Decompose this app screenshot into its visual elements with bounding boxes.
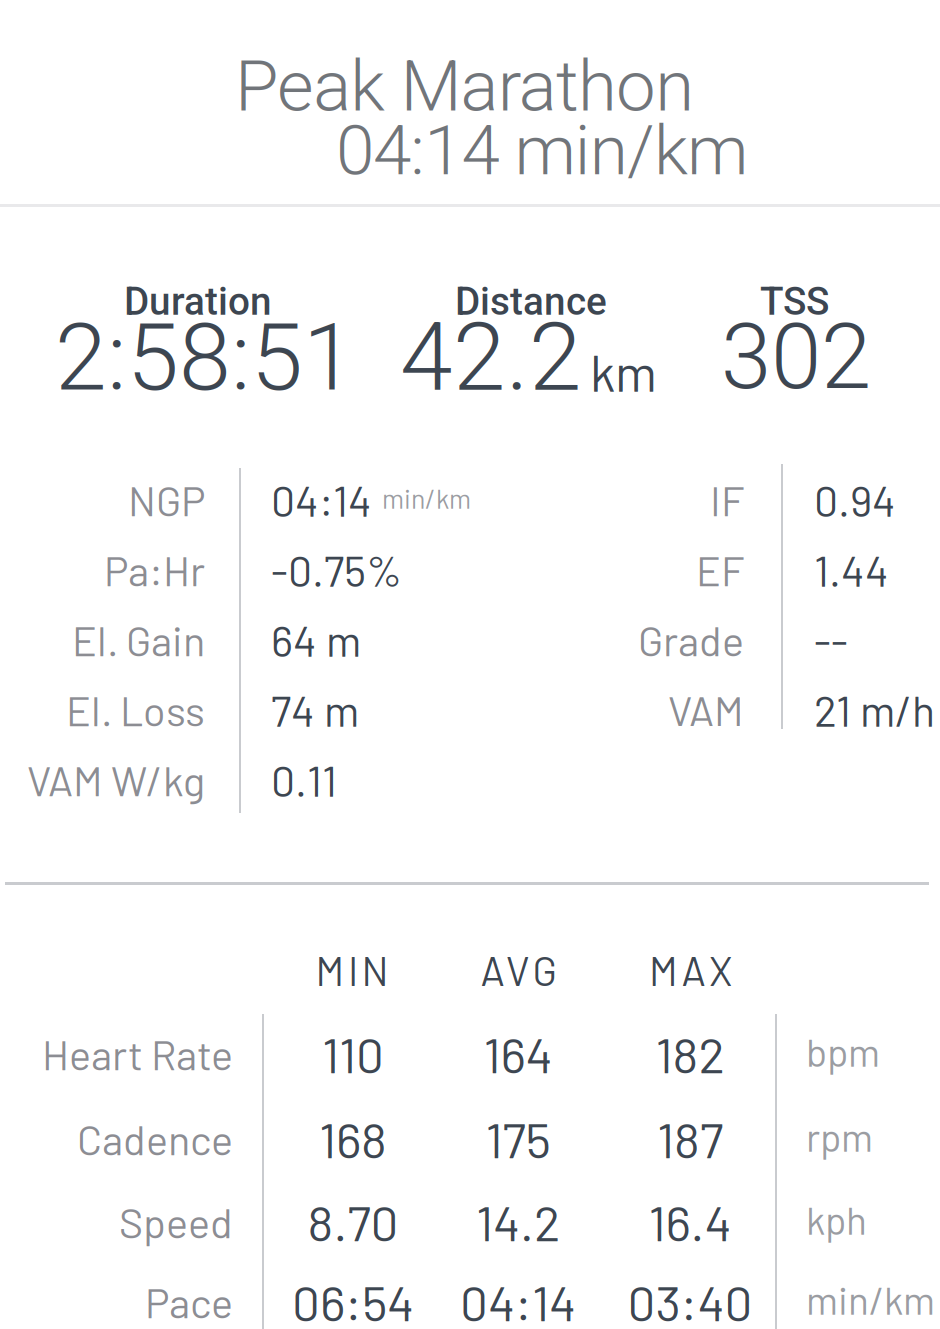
staticText: 04:14 min/km	[336, 110, 748, 191]
staticText: Distance	[455, 279, 607, 324]
staticText: 04:14	[271, 474, 372, 525]
staticText: El. Gain	[72, 615, 205, 665]
staticText: El. Loss	[66, 685, 205, 735]
staticText: 164	[483, 1024, 552, 1083]
staticText: rpm	[806, 1113, 873, 1159]
staticText: EF	[696, 545, 744, 595]
staticText: 42.2	[400, 302, 582, 413]
staticText: km	[590, 341, 657, 402]
staticText: 1.44	[814, 544, 889, 595]
staticText: 74 m	[271, 684, 359, 735]
staticText: 16.4	[648, 1192, 731, 1251]
staticText: kph	[806, 1196, 867, 1242]
staticText: min/km	[806, 1276, 935, 1322]
staticText: MIN	[315, 946, 388, 994]
staticText: -0.75%	[271, 544, 402, 595]
staticText: IF	[710, 475, 744, 525]
staticText: NGP	[128, 475, 205, 525]
staticText: 0.94	[814, 474, 896, 525]
staticText: min/km	[382, 482, 471, 514]
staticText: Duration	[124, 279, 272, 324]
staticText: 175	[485, 1109, 550, 1168]
staticText: VAM	[668, 685, 744, 735]
staticText: 168	[319, 1109, 387, 1168]
staticText: 8.70	[307, 1192, 398, 1251]
staticText: 04:14	[460, 1272, 576, 1329]
staticText: 06:54	[292, 1272, 414, 1329]
staticText: MAX	[649, 946, 733, 994]
staticText: 21 m/h	[814, 684, 935, 735]
staticText: 14.2	[476, 1192, 560, 1251]
staticText: 2:58:51	[55, 303, 355, 412]
staticText: 03:40	[627, 1272, 752, 1329]
staticText: Speed	[119, 1197, 233, 1247]
staticText: ‐‐	[814, 614, 848, 665]
staticText: Cadence	[77, 1114, 233, 1164]
staticText: Pace	[145, 1277, 233, 1327]
staticText: TSS	[760, 279, 829, 324]
staticText: 110	[322, 1024, 384, 1083]
staticText: 187	[657, 1109, 723, 1168]
staticText: Heart Rate	[42, 1029, 233, 1079]
staticText: 302	[721, 304, 871, 410]
staticText: Pa:Hr	[104, 545, 205, 595]
staticText: 64 m	[271, 614, 361, 665]
staticText: VAM W/kg	[27, 755, 205, 805]
staticText: Peak Marathon	[235, 45, 694, 128]
staticText: 0.11	[271, 754, 337, 805]
staticText: AVG	[480, 946, 557, 994]
staticText: bpm	[806, 1028, 880, 1074]
staticText: 182	[655, 1024, 724, 1083]
staticText: Grade	[638, 615, 744, 665]
